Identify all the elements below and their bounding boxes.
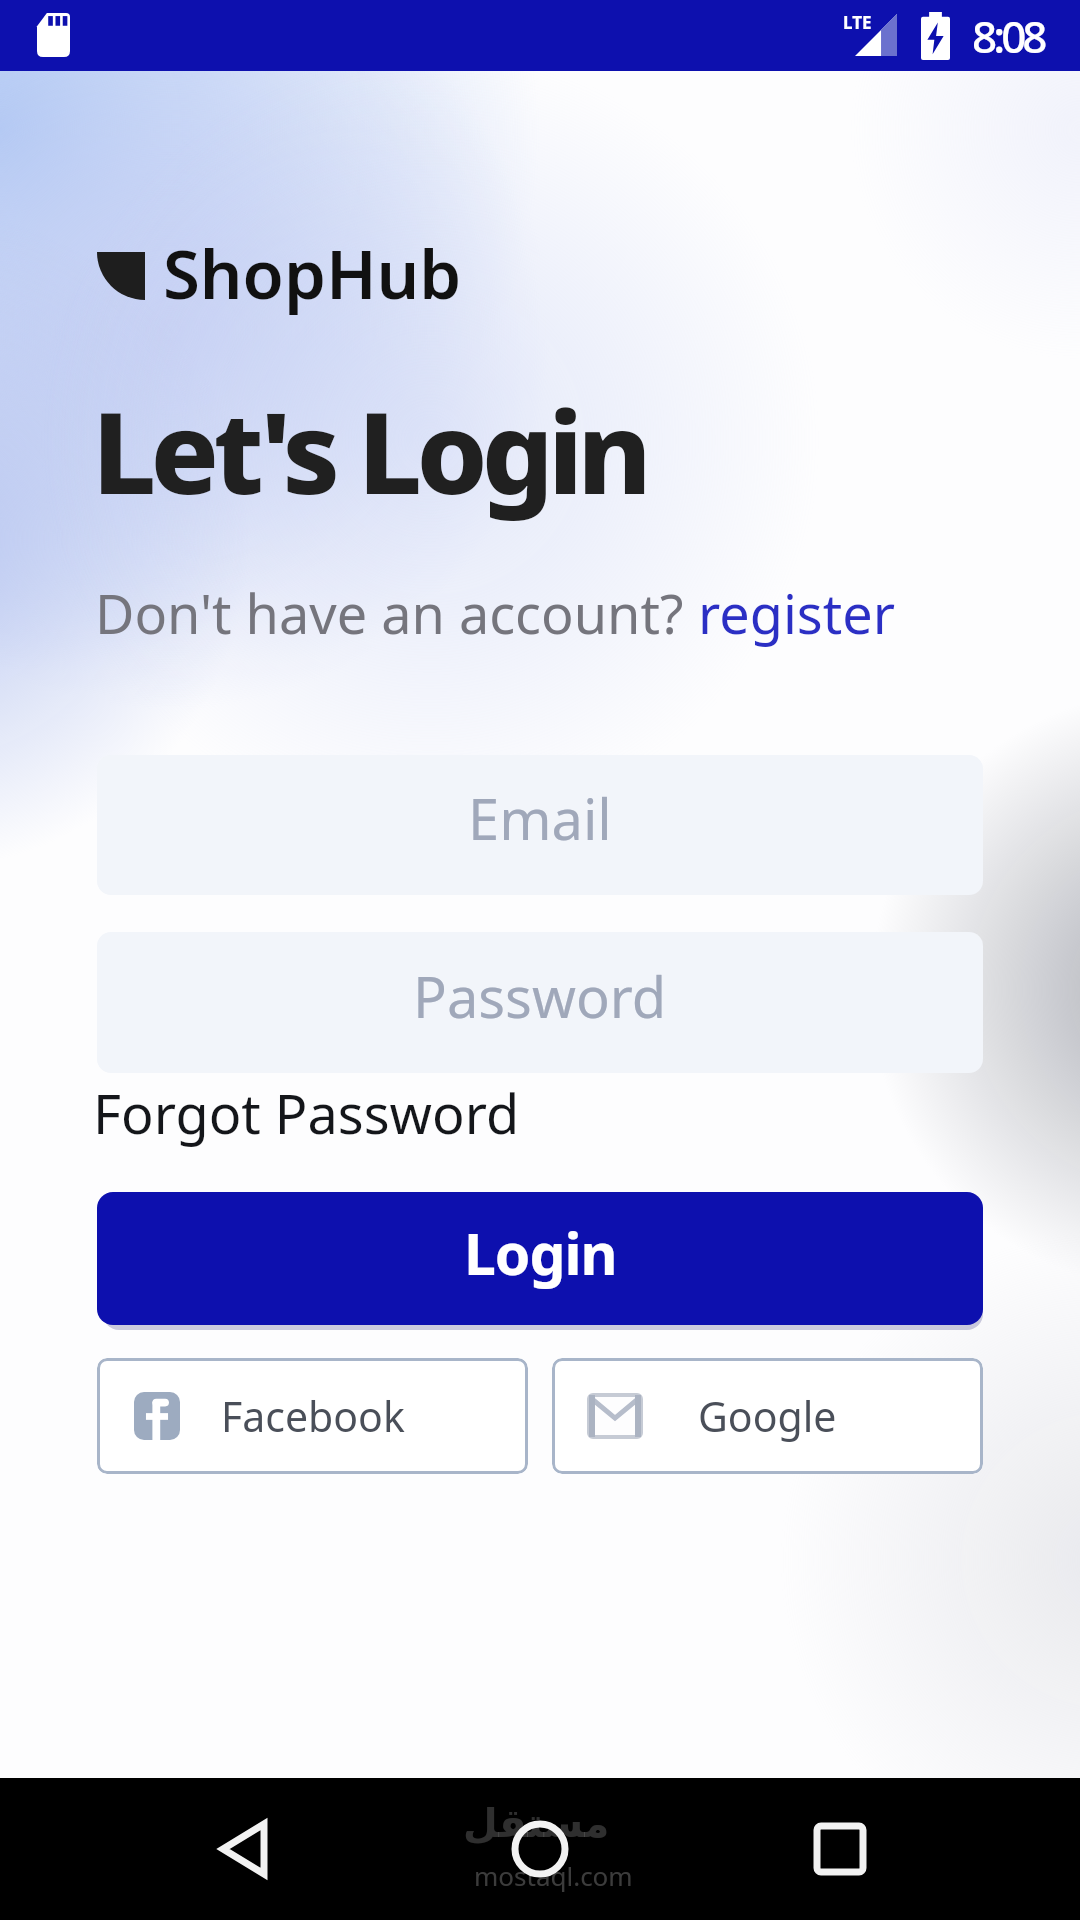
staticText: Facebook bbox=[221, 1388, 405, 1444]
staticText: 8:08 bbox=[972, 6, 1044, 66]
button[interactable] bbox=[511, 1820, 569, 1878]
staticText: Login bbox=[464, 1214, 617, 1292]
button[interactable] bbox=[814, 1823, 866, 1875]
staticText: Google bbox=[698, 1388, 837, 1444]
staticText: Don't have an account? bbox=[95, 576, 698, 650]
button[interactable]: Password bbox=[97, 932, 983, 1073]
button[interactable]: Login bbox=[97, 1192, 983, 1325]
button[interactable] bbox=[218, 1820, 268, 1878]
button[interactable]: Email bbox=[97, 755, 983, 895]
button[interactable]: Forgot Password bbox=[93, 1076, 520, 1150]
staticText: mostaql.com bbox=[474, 1858, 633, 1893]
button[interactable]: register bbox=[698, 576, 895, 650]
staticText: Let's Login bbox=[92, 373, 646, 527]
staticText: ShopHub bbox=[163, 227, 462, 318]
staticText: Password bbox=[413, 958, 667, 1034]
button[interactable]: Facebook bbox=[97, 1358, 528, 1474]
staticText: Email bbox=[468, 780, 612, 856]
button[interactable]: Google bbox=[552, 1358, 983, 1474]
staticText: LTE bbox=[843, 11, 872, 34]
staticText: مستقل bbox=[463, 1800, 610, 1847]
